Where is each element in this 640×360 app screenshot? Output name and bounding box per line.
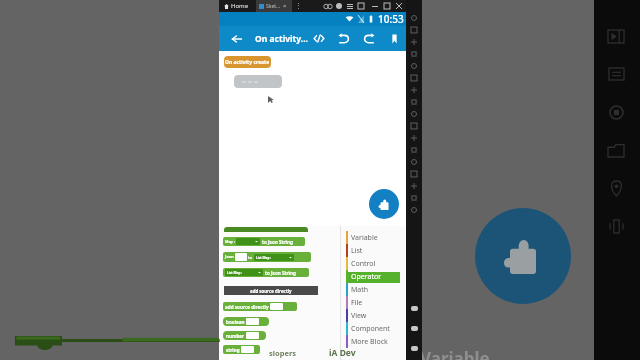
button[interactable]: Emulator control — [406, 168, 422, 180]
button[interactable]: Maximise — [381, 0, 393, 12]
button[interactable]: List Map : — [225, 269, 263, 276]
button[interactable]: Add block — [369, 189, 399, 219]
button[interactable]: Sket... — [256, 0, 292, 12]
staticText: List Map : — [227, 271, 243, 275]
button[interactable]: View — [341, 309, 406, 322]
staticText: On activity... — [255, 33, 308, 45]
button[interactable]: Location — [594, 170, 638, 206]
button[interactable]: Menu — [344, 0, 355, 12]
staticText: Map : — [225, 239, 235, 244]
staticText: 10:53 — [378, 12, 404, 26]
button[interactable]: Resize — [355, 0, 366, 12]
button[interactable]: Video — [594, 18, 638, 54]
button[interactable]: List Map : — [254, 254, 294, 261]
button[interactable]: Emulator control — [406, 132, 422, 144]
staticText: File — [351, 298, 363, 308]
button[interactable]: Emulator control — [406, 156, 422, 168]
staticText: List — [351, 246, 363, 256]
staticText: to Json String — [265, 270, 296, 276]
button[interactable]: View source code — [308, 26, 330, 51]
button[interactable]: Nav key — [406, 338, 422, 358]
button[interactable]: Emulator control — [406, 48, 422, 60]
staticText: Operator — [351, 272, 382, 282]
staticText: On activity create — [225, 59, 270, 66]
button[interactable]: Emulator control — [406, 180, 422, 192]
staticText: View — [351, 311, 367, 321]
staticText: boolean — [226, 319, 245, 325]
staticText: Component — [351, 324, 390, 334]
staticText: number — [226, 333, 245, 339]
button[interactable]: add source directly — [224, 286, 318, 295]
button[interactable]: Close — [393, 0, 405, 12]
button[interactable]: Accounts — [322, 0, 333, 12]
staticText: to — [248, 255, 253, 260]
button[interactable]: On activity create — [224, 56, 271, 68]
button[interactable]: Emulator control — [406, 84, 422, 96]
staticText: Math — [351, 285, 369, 295]
button[interactable]: Emulator control — [406, 36, 422, 48]
button[interactable]: Json — [223, 252, 311, 262]
button[interactable]: Emulator control — [406, 72, 422, 84]
button[interactable]: More — [294, 0, 302, 12]
button[interactable]: string — [223, 345, 260, 354]
staticText: ⋮ — [295, 2, 302, 10]
button[interactable]: Map : — [223, 237, 305, 246]
button[interactable]: List Map : — [223, 268, 309, 277]
button[interactable]: Emulator control — [406, 192, 422, 204]
button[interactable]: Profile — [333, 0, 344, 12]
button[interactable]: Emulator control — [406, 24, 422, 36]
button[interactable]: Emulator control — [406, 120, 422, 132]
staticText: iA Dev — [329, 347, 356, 359]
button[interactable]: File — [341, 296, 406, 309]
button[interactable]: Emulator control — [406, 96, 422, 108]
staticText: List Map : — [256, 256, 272, 260]
button[interactable]: Undo — [333, 26, 355, 51]
button[interactable]: List — [341, 244, 406, 257]
button[interactable]: Transfer — [594, 56, 638, 92]
staticText: slopers — [269, 348, 297, 358]
button[interactable]: More Block — [341, 335, 406, 348]
button[interactable]: Vibrate — [594, 208, 638, 244]
button[interactable]: Back — [226, 26, 248, 51]
staticText: Control — [351, 259, 376, 269]
button[interactable]: Component — [341, 322, 406, 335]
button[interactable]: Emulator control — [406, 12, 422, 24]
button[interactable] — [236, 238, 260, 245]
staticText: Variable — [420, 347, 490, 360]
button[interactable]: Emulator control — [406, 108, 422, 120]
button[interactable]: boolean — [223, 317, 269, 326]
button[interactable]: Operator — [341, 270, 406, 283]
button[interactable]: Emulator control — [406, 60, 422, 72]
staticText: to Json String — [262, 239, 293, 245]
button[interactable]: Variable — [341, 231, 406, 244]
button[interactable]: Nav key — [406, 318, 422, 338]
button[interactable]: Minimise — [369, 0, 381, 12]
button[interactable] — [234, 75, 282, 88]
button[interactable]: add source directly — [223, 302, 297, 311]
button[interactable]: Emulator control — [406, 144, 422, 156]
staticText: add source directly — [250, 288, 292, 294]
button[interactable]: Bookmark — [383, 26, 405, 51]
button[interactable]: Control — [341, 257, 406, 270]
staticText: Sket... — [266, 3, 281, 10]
staticText: string — [226, 347, 240, 353]
button[interactable]: Math — [341, 283, 406, 296]
staticText: Variable — [351, 233, 378, 243]
button[interactable]: Emulator control — [406, 204, 422, 216]
button[interactable]: Redo — [358, 26, 380, 51]
button[interactable]: Device — [594, 94, 638, 130]
staticText: Home — [231, 2, 249, 10]
button[interactable]: Home — [224, 0, 249, 12]
staticText: More Block — [351, 337, 388, 347]
button[interactable]: Files — [594, 132, 638, 168]
staticText: × — [283, 2, 287, 10]
staticText: Json — [225, 254, 234, 260]
staticText: add source directly — [225, 304, 269, 310]
button[interactable]: Nav key — [406, 298, 422, 318]
button[interactable]: number — [223, 331, 266, 340]
